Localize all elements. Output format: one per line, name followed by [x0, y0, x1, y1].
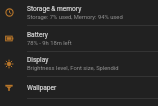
staticText: Wallpaper	[27, 84, 57, 92]
other: Battery	[5, 34, 14, 43]
button[interactable]: Display	[0, 52, 158, 76]
staticText: Battery	[27, 31, 48, 39]
button[interactable]: Battery	[0, 26, 158, 51]
staticText: Brightness level, Font size, Splendid	[27, 65, 119, 72]
staticText: Display	[27, 56, 49, 64]
other: Storage and memory	[5, 8, 14, 17]
other: Wallpaper	[5, 84, 13, 92]
staticText: Storage & memory	[27, 5, 82, 13]
button[interactable]: Storage and memory	[0, 0, 158, 25]
button[interactable]: Wallpaper	[0, 77, 158, 98]
staticText: Storage: 7% used, Memory: 94% used	[27, 14, 123, 21]
other: Display	[5, 60, 13, 68]
staticText: 78% - 9h 18m left	[27, 40, 72, 47]
